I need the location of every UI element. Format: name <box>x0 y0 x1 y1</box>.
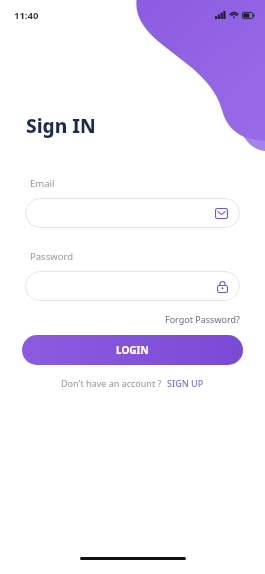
staticText: LOGIN <box>116 343 149 357</box>
staticText: Forgot Password? <box>165 313 240 325</box>
staticText: 11:40 <box>14 9 39 22</box>
staticText: Sign IN <box>26 113 96 139</box>
button[interactable]: Password input <box>25 271 240 301</box>
button[interactable]: LOGIN <box>22 335 243 365</box>
staticText: SIGN UP <box>167 377 204 389</box>
button[interactable]: Email input <box>25 198 240 228</box>
button[interactable]: SIGN UP <box>167 377 204 389</box>
staticText: Email <box>30 177 55 190</box>
button[interactable]: Forgot Password? <box>165 311 265 327</box>
staticText: Password <box>30 250 73 263</box>
staticText: Don't have an account ? <box>61 377 162 389</box>
